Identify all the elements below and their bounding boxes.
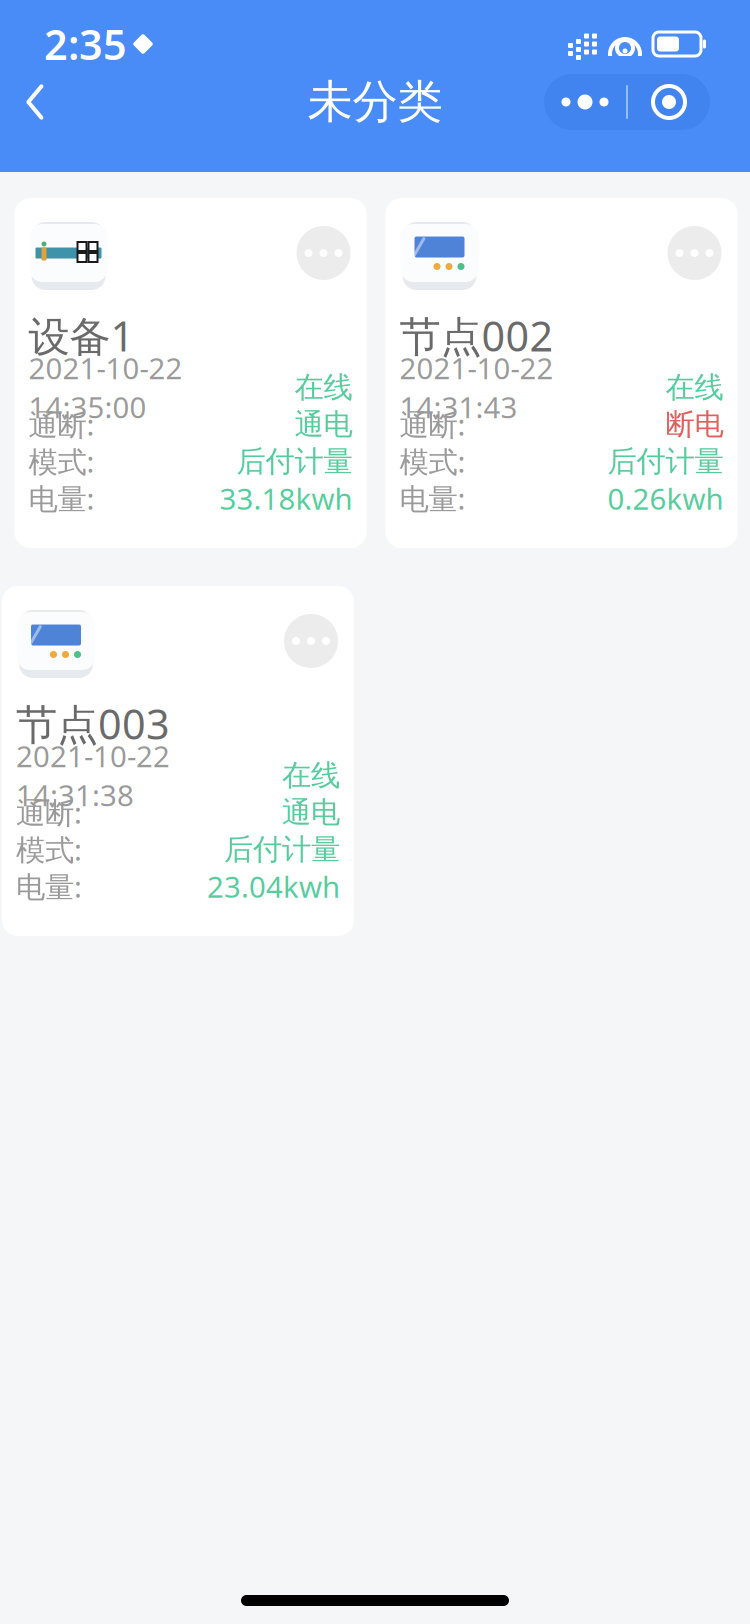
staticText: 2021-10-22 14:31:43 [399, 348, 553, 426]
staticText: 模式: [28, 442, 94, 481]
button[interactable]: Back [0, 70, 70, 134]
staticText: 通断: [28, 405, 94, 444]
button[interactable]: More options [665, 224, 723, 282]
staticText: 在线 [294, 369, 352, 405]
staticText: 模式: [16, 830, 82, 869]
staticText: 通电 [282, 794, 340, 830]
staticText: 通电 [294, 406, 352, 442]
staticText: 通断: [399, 405, 465, 444]
staticText: 0.26kwh [607, 479, 723, 518]
staticText: 23.04kwh [207, 867, 340, 906]
button[interactable]: More options [282, 612, 340, 670]
button[interactable]: 节点002 [385, 198, 737, 548]
button[interactable]: 节点003 [2, 586, 354, 936]
staticText: 电量: [28, 479, 94, 518]
staticText: 节点003 [16, 696, 170, 751]
staticText: 电量: [16, 867, 82, 906]
staticText: 在线 [282, 757, 340, 793]
staticText: 断电 [665, 406, 723, 442]
button[interactable]: More and Close [544, 74, 710, 130]
button[interactable]: 设备1 [14, 198, 366, 548]
staticText: 33.18kwh [219, 479, 352, 518]
staticText: 后付计量 [236, 443, 352, 479]
staticText: 2021-10-22 14:31:38 [16, 736, 170, 814]
staticText: 后付计量 [607, 443, 723, 479]
staticText: 未分类 [307, 74, 442, 130]
staticText: 2021-10-22 14:35:00 [28, 348, 182, 426]
staticText: 通断: [16, 793, 82, 832]
staticText: 在线 [665, 369, 723, 405]
staticText: 电量: [399, 479, 465, 518]
staticText: 节点002 [399, 308, 553, 363]
staticText: 后付计量 [224, 831, 340, 867]
staticText: 2:35 [44, 17, 127, 71]
button[interactable]: More options [294, 224, 352, 282]
staticText: 设备1 [28, 308, 134, 363]
staticText: 模式: [399, 442, 465, 481]
